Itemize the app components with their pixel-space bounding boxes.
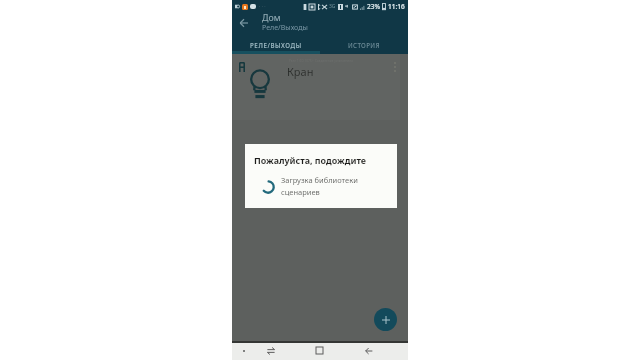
staticText: Пожалуйста, подождите (254, 154, 367, 166)
staticText: · · · (259, 3, 266, 10)
staticText: ИСТОРИЯ (348, 41, 380, 49)
button[interactable]: More options (389, 59, 401, 75)
staticText: РЕЛЕ/ВЫХОДЫ (250, 41, 302, 49)
staticText: 3G (329, 3, 336, 10)
staticText: Реле/Выходы (262, 22, 308, 32)
button[interactable]: Home (313, 343, 326, 358)
button[interactable]: Add (374, 308, 397, 331)
button[interactable]: Back (235, 14, 253, 32)
staticText: Загрузка библиотеки сценариев (281, 175, 358, 197)
button[interactable]: РЕЛЕ/ВЫХОДЫ (232, 38, 320, 54)
staticText: Кран (287, 64, 314, 79)
button[interactable]: Back (362, 343, 375, 358)
staticText: 11:16 (388, 2, 405, 11)
button[interactable]: ИСТОРИЯ (320, 38, 408, 54)
staticText: 23% (367, 2, 380, 11)
button[interactable]: Switch apps (264, 343, 277, 358)
staticText: Дом (262, 12, 281, 24)
button[interactable]: Menu (237, 343, 250, 358)
button[interactable]: Реле 1 (ID 1075) · Соединение установлен… (233, 54, 400, 120)
